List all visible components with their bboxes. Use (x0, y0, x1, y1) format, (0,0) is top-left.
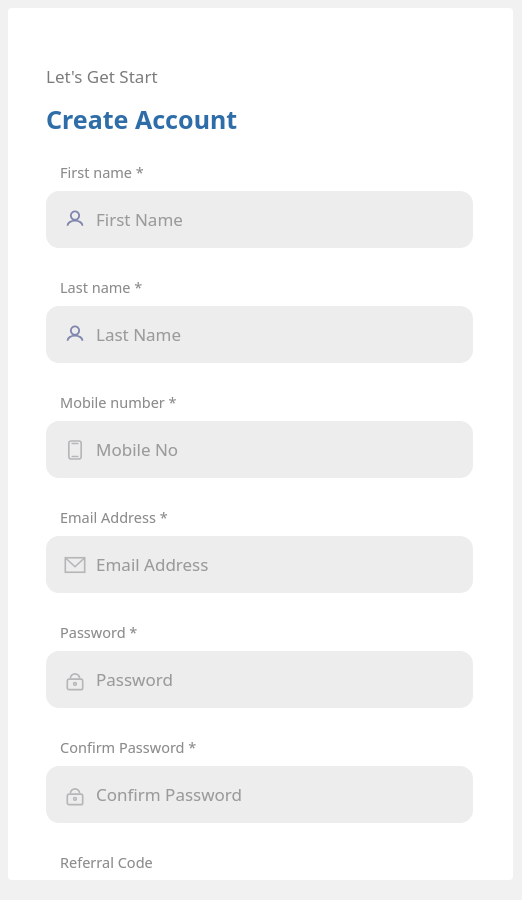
button[interactable]: First Name (46, 191, 473, 248)
staticText: Confirm Password (96, 783, 242, 806)
staticText: Referral Code (60, 852, 153, 872)
staticText: Password (96, 668, 173, 691)
button[interactable]: Mobile No (46, 421, 473, 478)
button[interactable]: Password (46, 651, 473, 708)
staticText: Password * (60, 622, 138, 642)
staticText: First Name (96, 208, 183, 231)
staticText: Let's Get Start (46, 65, 158, 88)
staticText: Confirm Password * (60, 737, 197, 757)
staticText: Last Name (96, 323, 182, 346)
staticText: Create Account (46, 102, 237, 136)
button[interactable]: Last Name (46, 306, 473, 363)
staticText: Mobile No (96, 438, 179, 461)
button[interactable]: Confirm Password (46, 766, 473, 823)
staticText: Last name * (60, 277, 143, 297)
staticText: First name * (60, 162, 144, 182)
staticText: Mobile number * (60, 392, 177, 412)
button[interactable]: Email Address (46, 536, 473, 593)
staticText: Email Address * (60, 507, 168, 527)
staticText: Email Address (96, 553, 209, 576)
